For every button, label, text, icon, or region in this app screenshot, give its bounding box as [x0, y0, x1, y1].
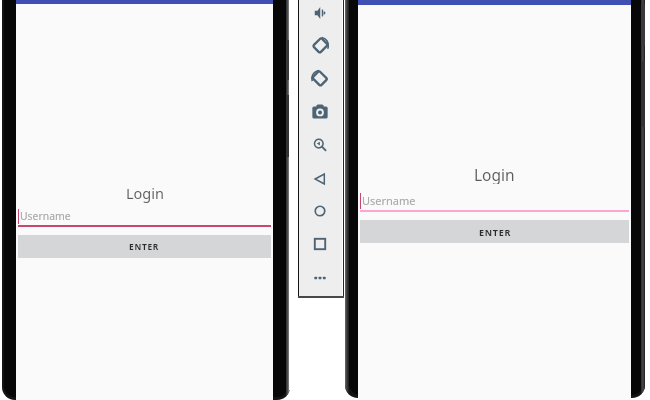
staticText: ENTER	[479, 226, 511, 238]
button[interactable]: Rotate left	[306, 31, 334, 59]
button[interactable]: Zoom	[306, 131, 334, 159]
staticText: Login	[474, 164, 515, 184]
button[interactable]: Overview	[306, 230, 334, 258]
button[interactable]: Home	[306, 197, 334, 225]
staticText: ENTER	[129, 241, 160, 252]
button[interactable]: Volume	[306, 0, 334, 27]
staticText: Username	[20, 209, 71, 223]
staticText: Username	[362, 193, 416, 208]
button[interactable]: Screenshot	[306, 98, 334, 126]
button[interactable]: ENTER	[18, 235, 271, 258]
button[interactable]: Rotate right	[306, 64, 334, 92]
staticText: Login	[126, 183, 164, 203]
button[interactable]: More	[306, 264, 334, 292]
button[interactable]: ENTER	[360, 220, 629, 243]
button[interactable]: Back	[306, 165, 334, 193]
